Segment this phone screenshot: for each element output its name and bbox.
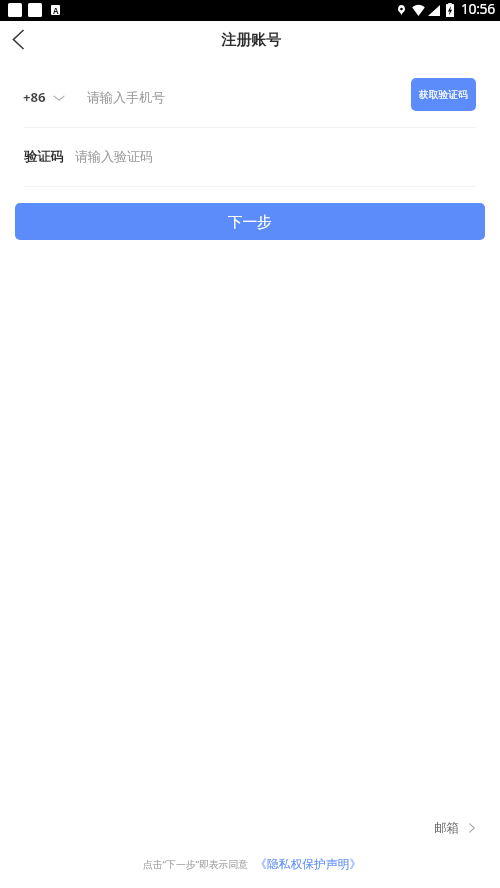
staticText: 下一步 xyxy=(228,213,272,231)
button[interactable]: 请输入手机号 xyxy=(80,78,405,111)
staticText: +86 xyxy=(23,88,46,106)
staticText: 请输入验证码 xyxy=(75,148,153,164)
staticText: 请输入手机号 xyxy=(87,89,165,105)
staticText: 邮箱 xyxy=(434,820,459,836)
staticText: 《隐私权保护声明》 xyxy=(255,857,362,872)
button[interactable]: 《隐私权保护声明》 xyxy=(255,857,362,872)
staticText: A xyxy=(53,5,59,15)
staticText: 注册账号 xyxy=(221,31,281,50)
button[interactable]: 获取验证码 xyxy=(411,78,476,111)
button[interactable]: Back xyxy=(1,22,35,56)
staticText: 获取验证码 xyxy=(419,89,468,101)
button[interactable]: +86 xyxy=(15,80,72,114)
staticText: 10:56 xyxy=(461,0,495,18)
staticText: 点击“下一步”即表示同意 xyxy=(143,858,249,871)
staticText: 验证码 xyxy=(24,148,64,165)
button[interactable]: 邮箱 xyxy=(428,813,481,843)
button[interactable]: 验证码 xyxy=(24,137,476,179)
button[interactable]: 下一步 xyxy=(15,203,485,240)
